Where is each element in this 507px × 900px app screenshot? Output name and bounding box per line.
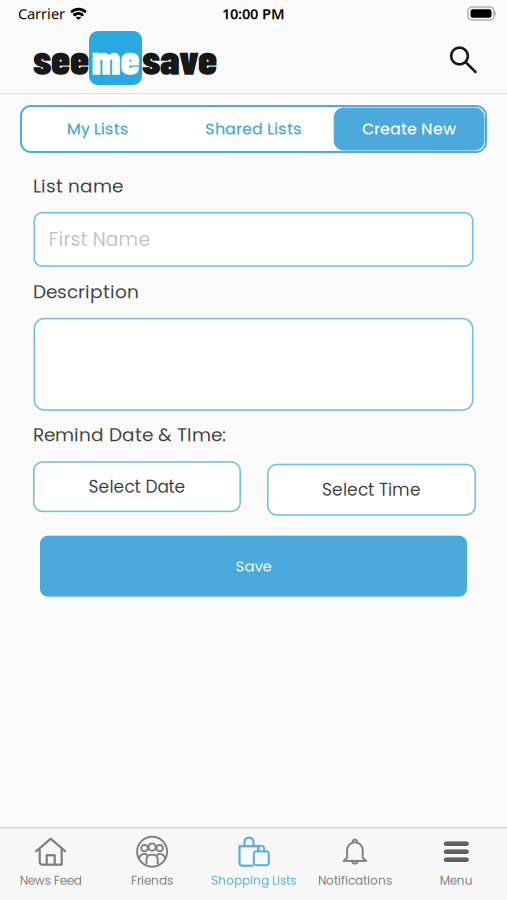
staticText: me [91,33,139,83]
staticText: Carrier [18,4,65,23]
staticText: see [33,33,89,83]
staticText: List name [33,173,123,199]
button[interactable]: Select Date [33,461,241,512]
staticText: Select Date [88,475,185,499]
button[interactable]: My Lists [20,105,176,153]
button[interactable]: Shopping Lists [203,836,304,889]
button[interactable]: Save [40,536,467,597]
staticText: Description [33,279,139,305]
button[interactable]: Create New [331,105,487,153]
staticText: Shared Lists [205,118,302,140]
staticText: My Lists [67,118,129,140]
button[interactable]: Description [33,318,473,411]
staticText: Notifications [318,872,392,889]
staticText: Select Time [322,478,421,502]
staticText: Shopping Lists [211,872,296,889]
button[interactable]: Select Time [267,461,476,513]
button[interactable]: Shared Lists [176,105,331,153]
staticText: 10:00 PM [222,4,285,23]
staticText: First Name [48,226,150,253]
staticText: Friends [131,872,173,889]
staticText: News Feed [20,872,82,889]
staticText: save [142,33,217,83]
staticText: Menu [440,872,473,889]
button[interactable]: Menu [406,836,507,889]
button[interactable]: Notifications [304,836,406,889]
button[interactable]: List name [33,212,473,267]
staticText: Create New [362,118,456,140]
staticText: Save [235,556,271,577]
button[interactable]: News Feed [0,836,101,889]
button[interactable]: Search [450,46,507,73]
staticText: Remind Date & TIme: [33,422,226,448]
button[interactable]: Friends [101,836,203,889]
